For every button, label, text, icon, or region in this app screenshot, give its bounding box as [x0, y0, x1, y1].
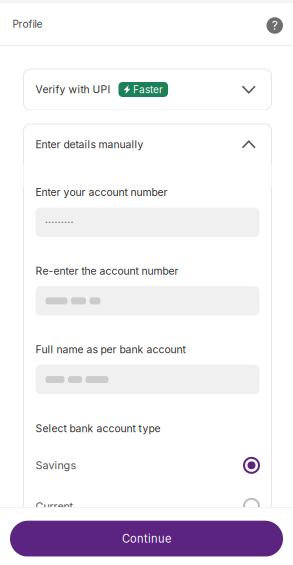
staticText: Savings [35, 459, 76, 472]
button[interactable]: Current [35, 486, 259, 527]
staticText: Continue [122, 532, 171, 545]
staticText: Re-enter the account number [35, 265, 178, 277]
staticText: Enter details manually [35, 138, 143, 151]
staticText: Enter your account number [35, 186, 167, 199]
staticText: Select bank account type [35, 422, 160, 435]
staticText: Profile [12, 18, 42, 30]
button[interactable]: Savings [35, 445, 259, 486]
staticText: Faster [133, 83, 163, 96]
button[interactable]: Help [266, 14, 283, 34]
staticText: Verify with UPI [35, 83, 110, 96]
staticText: Full name as per bank account [35, 343, 185, 356]
staticText: ? [272, 18, 278, 33]
button[interactable]: Continue [10, 521, 283, 557]
button[interactable]: Enter details manually [23, 124, 271, 165]
staticText: Current [35, 500, 73, 513]
button[interactable]: Verify with UPI [23, 69, 271, 110]
